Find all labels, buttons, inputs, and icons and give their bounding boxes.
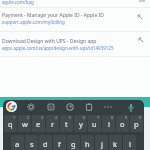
staticText: t xyxy=(65,119,68,129)
staticText: u xyxy=(92,119,97,129)
button[interactable] xyxy=(0,32,150,56)
staticText: Payment - Manage your Apple ID - Apple I… xyxy=(2,12,104,19)
staticText: r xyxy=(51,119,55,129)
staticText: apps.apple.com/us/app/design-with-ups/id… xyxy=(2,45,114,51)
staticText: s xyxy=(30,139,34,149)
button[interactable] xyxy=(47,103,55,111)
staticText: 4 xyxy=(55,115,58,120)
button[interactable] xyxy=(137,14,143,20)
staticText: e xyxy=(36,119,41,129)
button[interactable]: i xyxy=(102,115,115,132)
staticText: k xyxy=(113,139,118,149)
staticText: i xyxy=(108,119,110,129)
button[interactable]: o xyxy=(116,115,129,132)
button[interactable]: s xyxy=(25,135,38,150)
button[interactable]: k xyxy=(109,135,122,150)
staticText: apple.com/bag xyxy=(2,0,34,5)
button[interactable] xyxy=(127,103,135,113)
button[interactable] xyxy=(103,103,113,111)
staticText: g xyxy=(71,139,76,149)
staticText: 5 xyxy=(69,115,72,120)
staticText: a xyxy=(15,139,20,149)
staticText: 8 xyxy=(111,115,114,120)
staticText: 9 xyxy=(125,115,128,120)
staticText: l xyxy=(129,139,131,149)
button[interactable]: a xyxy=(11,135,24,150)
staticText: Download Design with UPS - Design app xyxy=(2,38,97,45)
button[interactable]: l xyxy=(123,135,136,150)
button[interactable]: y xyxy=(74,115,87,132)
button[interactable]: e xyxy=(32,115,45,132)
staticText: w xyxy=(22,119,28,129)
button[interactable]: p xyxy=(130,115,143,132)
button[interactable] xyxy=(85,103,93,111)
staticText: o xyxy=(120,119,125,129)
button[interactable] xyxy=(66,103,74,111)
button[interactable]: f xyxy=(53,135,66,150)
button[interactable] xyxy=(6,101,17,112)
staticText: 3 xyxy=(41,115,44,120)
staticText: d xyxy=(43,139,48,149)
staticText: 0 xyxy=(139,115,142,120)
staticText: q xyxy=(8,119,13,129)
staticText: h xyxy=(85,139,90,149)
button[interactable]: h xyxy=(81,135,94,150)
button[interactable]: w xyxy=(18,115,31,132)
button[interactable]: t xyxy=(60,115,73,132)
staticText: j xyxy=(101,139,103,149)
button[interactable]: q xyxy=(4,115,17,132)
button[interactable] xyxy=(27,103,35,111)
button[interactable]: u xyxy=(88,115,101,132)
button[interactable]: g xyxy=(67,135,80,150)
staticText: f xyxy=(58,139,61,149)
button[interactable]: r xyxy=(46,115,59,132)
staticText: p xyxy=(134,119,139,129)
staticText: 6 xyxy=(83,115,86,120)
staticText: support.apple.com/my/billing xyxy=(2,19,65,25)
button[interactable] xyxy=(138,37,144,43)
staticText: 2 xyxy=(27,115,30,120)
button[interactable] xyxy=(0,0,150,7)
staticText: y xyxy=(79,119,83,129)
button[interactable] xyxy=(0,8,150,31)
staticText: 1 xyxy=(13,115,16,120)
button[interactable]: j xyxy=(95,135,108,150)
button[interactable]: d xyxy=(39,135,52,150)
staticText: 7 xyxy=(97,115,100,120)
